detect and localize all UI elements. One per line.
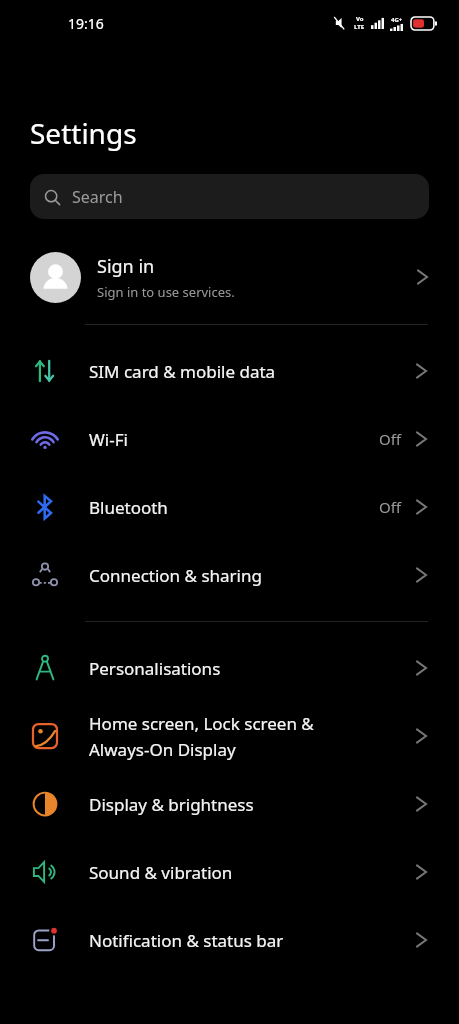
- button[interactable]: Notification & status bar: [0, 906, 459, 974]
- button[interactable]: Connection & sharing: [0, 541, 459, 609]
- button[interactable]: Bluetooth: [0, 473, 459, 541]
- button[interactable]: Search: [30, 174, 429, 219]
- button[interactable]: Wi-Fi: [0, 405, 459, 473]
- staticText: Bluetooth: [89, 496, 379, 519]
- staticText: LTE: [354, 23, 365, 31]
- button[interactable]: Personalisations: [0, 634, 459, 702]
- staticText: Connection & sharing: [89, 564, 415, 587]
- staticText: Sound & vibration: [89, 861, 415, 884]
- staticText: Wi-Fi: [89, 428, 379, 451]
- staticText: Settings: [30, 114, 137, 152]
- button[interactable]: Display & brightness: [0, 770, 459, 838]
- staticText: Vo: [356, 15, 364, 23]
- staticText: Off: [379, 429, 402, 449]
- staticText: Home screen, Lock screen & Always-On Dis…: [89, 712, 415, 761]
- button[interactable]: SIM card & mobile data: [0, 337, 459, 405]
- button[interactable]: Sound & vibration: [0, 838, 459, 906]
- staticText: Off: [379, 497, 402, 517]
- staticText: Display & brightness: [89, 793, 415, 816]
- button[interactable]: Sign in: [0, 244, 459, 310]
- staticText: Sign in to use services.: [97, 283, 235, 301]
- staticText: 4G+: [391, 16, 403, 24]
- staticText: Personalisations: [89, 657, 415, 680]
- staticText: 19:16: [68, 14, 104, 33]
- button[interactable]: Home screen, Lock screen & Always-On Dis…: [0, 702, 459, 770]
- staticText: Sign in: [97, 254, 155, 279]
- staticText: SIM card & mobile data: [89, 360, 415, 383]
- staticText: Notification & status bar: [89, 929, 415, 952]
- staticText: Search: [72, 186, 123, 208]
